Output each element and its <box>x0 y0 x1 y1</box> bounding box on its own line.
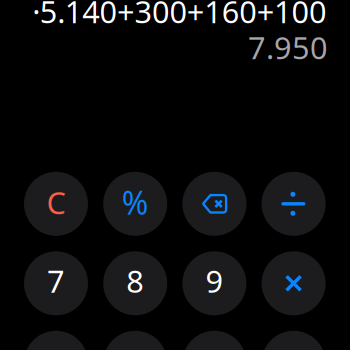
button[interactable]: Clear <box>24 172 88 236</box>
button[interactable]: Multiply <box>262 251 326 315</box>
button[interactable]: 6 <box>182 331 246 350</box>
button[interactable]: 8 <box>103 251 167 315</box>
button[interactable]: 5 <box>103 331 167 350</box>
staticText: 7.950 <box>248 27 328 68</box>
button[interactable]: Minus <box>262 331 326 350</box>
button[interactable]: Divide <box>262 172 326 236</box>
button[interactable]: Delete <box>182 172 246 236</box>
staticText: 9 <box>205 260 223 301</box>
staticText: % <box>122 181 149 224</box>
staticText: ·5.140+300+160+100 <box>32 0 327 32</box>
button[interactable]: 4 <box>24 331 88 350</box>
staticText: C <box>46 182 65 223</box>
staticText: 7 <box>47 260 65 301</box>
button[interactable]: Percent <box>103 172 167 236</box>
staticText: 8 <box>126 260 144 301</box>
button[interactable]: 9 <box>182 251 246 315</box>
button[interactable]: 7 <box>24 251 88 315</box>
